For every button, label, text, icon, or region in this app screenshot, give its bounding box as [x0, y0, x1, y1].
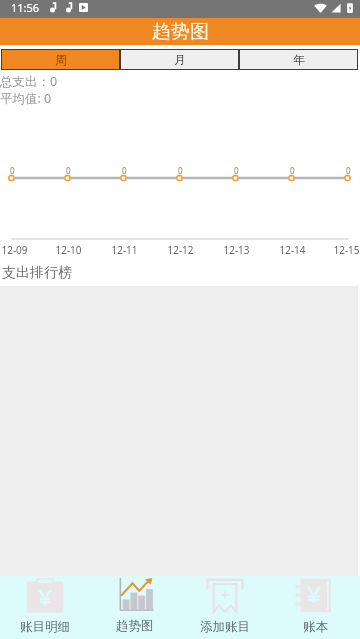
staticText: 0: [122, 165, 127, 176]
button[interactable]: 周: [2, 50, 119, 69]
staticText: 12-09: [1, 243, 28, 257]
staticText: 0: [346, 165, 351, 176]
staticText: 0: [234, 165, 239, 176]
other: 账目明细: [26, 578, 64, 613]
staticText: 周: [55, 52, 67, 67]
staticText: 趋势图: [152, 20, 209, 44]
staticText: 12-13: [223, 243, 250, 257]
other: 添加账目: [206, 578, 244, 613]
button[interactable]: 年: [240, 50, 357, 69]
staticText: 账目明细: [20, 619, 70, 635]
staticText: 0: [290, 165, 295, 176]
staticText: 12-12: [167, 243, 194, 257]
staticText: 账本: [303, 619, 328, 635]
staticText: 总支出：0: [0, 73, 58, 90]
staticText: 12-15: [333, 243, 360, 257]
staticText: 添加账目: [200, 619, 250, 635]
staticText: 平均值: 0: [0, 90, 52, 107]
staticText: 12-14: [279, 243, 306, 257]
staticText: 0: [66, 165, 71, 176]
staticText: 0: [178, 165, 183, 176]
staticText: 12-11: [111, 243, 138, 257]
button[interactable]: 趋势图: [90, 576, 180, 639]
other: 账本: [295, 578, 335, 613]
staticText: 趋势图: [116, 618, 154, 634]
staticText: 支出排行榜: [2, 264, 72, 282]
staticText: 年: [293, 52, 305, 67]
button[interactable]: 账目明细: [0, 576, 90, 639]
staticText: 月: [174, 52, 186, 67]
staticText: 12-10: [55, 243, 82, 257]
button[interactable]: 添加账目: [180, 576, 270, 639]
staticText: 11:56: [11, 0, 40, 15]
button[interactable]: 账本: [270, 576, 360, 639]
other: 趋势图: [117, 578, 154, 612]
staticText: 0: [10, 165, 15, 176]
button[interactable]: 月: [121, 50, 238, 69]
